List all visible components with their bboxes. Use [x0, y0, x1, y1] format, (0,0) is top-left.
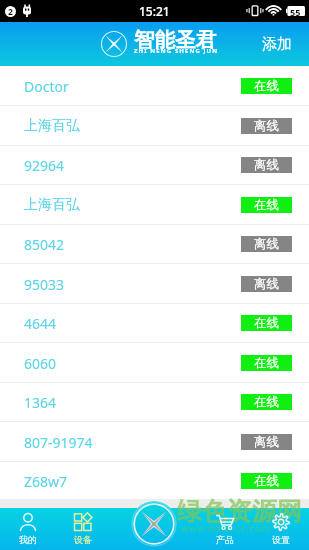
button[interactable]: Doctor [0, 66, 309, 106]
staticText: Z68w7 [24, 472, 68, 491]
staticText: 95033 [24, 275, 65, 294]
staticText: 上海百弘 [24, 196, 80, 214]
staticText: 在线 [254, 473, 279, 489]
staticText: 绿色资源网 [177, 496, 302, 527]
staticText: 15:21 [139, 3, 170, 19]
button[interactable]: 807-91974 [0, 422, 309, 462]
button[interactable]: 6060 [0, 343, 309, 383]
staticText: 产品 [216, 534, 234, 545]
staticText: 离线 [254, 157, 279, 173]
staticText: 在线 [254, 394, 279, 410]
staticText: 智能圣君 [134, 27, 216, 53]
staticText: 离线 [254, 236, 279, 252]
staticText: 85042 [24, 235, 65, 254]
staticText: 添加 [262, 35, 292, 54]
button[interactable]: 4644 [0, 303, 309, 343]
staticText: 离线 [254, 118, 279, 134]
staticText: 55 [290, 6, 301, 18]
staticText: 我的 [19, 534, 37, 545]
staticText: 92964 [24, 156, 65, 175]
button[interactable]: 上海百弘 [0, 185, 309, 225]
button[interactable]: 92964 [0, 145, 309, 185]
button[interactable]: Z68w7 [0, 461, 309, 501]
staticText: 设置 [272, 534, 290, 545]
staticText: ZHI NENG SHENG JUN [134, 47, 219, 55]
staticText: 2 [8, 6, 13, 17]
staticText: 在线 [254, 355, 279, 371]
staticText: 在线 [254, 78, 279, 94]
button[interactable]: Home [131, 501, 177, 547]
staticText: Doctor [24, 77, 69, 96]
staticText: 上海百弘 [24, 117, 80, 135]
button[interactable]: 85042 [0, 224, 309, 264]
button[interactable]: 1364 [0, 382, 309, 422]
staticText: 1364 [24, 393, 57, 412]
button[interactable]: 设置 [253, 508, 309, 550]
button[interactable]: 95033 [0, 264, 309, 304]
button[interactable]: 设备 [55, 508, 110, 550]
staticText: 807-91974 [24, 433, 93, 452]
button[interactable]: 产品 [197, 508, 253, 550]
staticText: 设备 [74, 534, 92, 545]
staticText: 在线 [254, 197, 279, 213]
button[interactable]: 我的 [0, 508, 55, 550]
staticText: 在线 [254, 315, 279, 331]
staticText: 离线 [254, 276, 279, 292]
staticText: 离线 [254, 434, 279, 450]
staticText: 6060 [24, 354, 57, 373]
button[interactable]: 添加 [245, 25, 309, 64]
staticText: 4644 [24, 314, 57, 333]
staticText: www.downcc.com [181, 522, 271, 534]
button[interactable]: 上海百弘 [0, 106, 309, 146]
